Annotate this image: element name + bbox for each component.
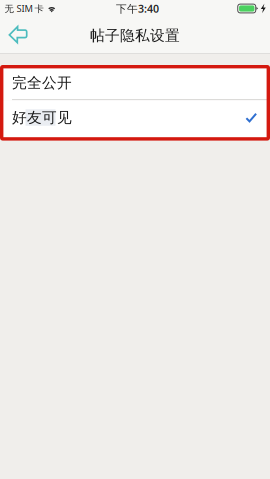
button[interactable]: Back — [0, 17, 39, 54]
staticText: 好友可见 — [12, 108, 72, 126]
button[interactable]: 完全公开 — [0, 66, 270, 99]
staticText: 帖子隐私设置 — [90, 26, 180, 44]
staticText: 无 SIM 卡 — [4, 2, 43, 15]
staticText: 下午3:40 — [116, 1, 159, 16]
button[interactable]: 好友可见 — [0, 100, 270, 138]
staticText: 完全公开 — [12, 74, 72, 92]
